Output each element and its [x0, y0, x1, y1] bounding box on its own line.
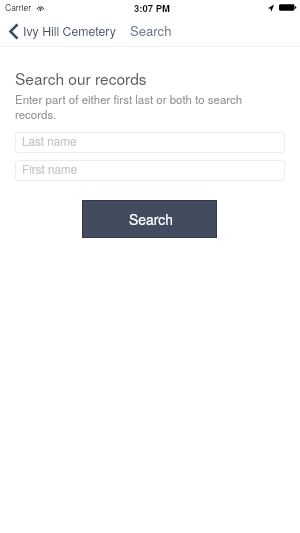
button[interactable]: Last name [15, 132, 285, 153]
staticText: 3:07 PM [134, 1, 170, 15]
staticText: Carrier [5, 1, 31, 13]
button[interactable]: Search [83, 201, 216, 237]
other: Back [9, 24, 18, 39]
button[interactable]: Search [128, 19, 174, 42]
staticText: First name [22, 161, 78, 178]
staticText: Search [129, 209, 173, 229]
staticText: Enter part of either first last or both … [15, 91, 283, 122]
button[interactable]: First name [15, 160, 285, 181]
staticText: Search [130, 21, 172, 40]
button[interactable]: Back [5, 20, 120, 42]
staticText: Ivy Hill Cemetery [23, 22, 116, 40]
staticText: Last name [22, 133, 77, 150]
staticText: Search our records [15, 67, 147, 89]
